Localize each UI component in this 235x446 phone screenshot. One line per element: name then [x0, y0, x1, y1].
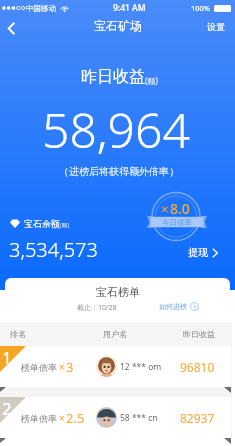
staticText: 今日倍率 — [162, 218, 192, 227]
staticText: 截止：10/28 — [77, 303, 117, 313]
staticText: 2 — [2, 397, 12, 420]
staticText: 排名 — [10, 329, 26, 339]
staticText: 96810 — [180, 359, 215, 375]
staticText: 3,534,573 — [9, 236, 98, 263]
staticText: (颗) — [145, 75, 158, 86]
staticText: 榜单倍率 — [21, 413, 57, 424]
staticText: 8.0 — [170, 199, 190, 218]
staticText: 设置 — [207, 21, 225, 32]
button[interactable]: 如何进榜 — [157, 300, 201, 313]
staticText: 中国移动 — [26, 4, 56, 13]
staticText: 9:41 AM — [113, 2, 146, 14]
staticText: 58,964 — [42, 97, 190, 162]
button[interactable]: 设置 — [199, 18, 233, 35]
staticText: 3 — [66, 358, 74, 376]
staticText: 82937 — [180, 410, 215, 426]
staticText: × — [59, 411, 65, 425]
staticText: 昨日收益 — [81, 67, 145, 87]
staticText: 宝石矿场 — [94, 18, 142, 33]
staticText: 1 — [2, 346, 12, 369]
staticText: 宝石榜单 — [96, 285, 140, 299]
staticText: 提现 — [188, 246, 208, 259]
button[interactable]: 提现 — [184, 243, 222, 262]
staticText: 58 *** cn — [120, 412, 158, 424]
staticText: 如何进榜 — [159, 302, 187, 311]
staticText: 榜单倍率 — [21, 362, 57, 373]
staticText: 用户名 — [103, 329, 127, 339]
staticText: × — [161, 200, 169, 218]
staticText: 2.5 — [66, 409, 85, 427]
staticText: （进榜后将获得额外倍率） — [59, 165, 179, 178]
staticText: 宝石余额 — [24, 218, 60, 229]
staticText: 12 *** om — [120, 361, 162, 373]
button[interactable]: 1 — [0, 346, 231, 387]
staticText: 昨日收益 — [183, 329, 215, 339]
button[interactable]: 2 — [0, 397, 231, 438]
staticText: 100% — [191, 3, 211, 13]
button[interactable]: Back — [0, 15, 26, 41]
staticText: × — [59, 360, 65, 374]
staticText: (颗) — [60, 221, 69, 229]
